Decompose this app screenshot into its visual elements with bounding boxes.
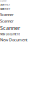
staticText: Scanner [0,24,20,32]
staticText: New Document [0,33,20,36]
staticText: Scanner [0,0,7,2]
staticText: New Document [0,37,27,42]
staticText: Scanner [0,12,14,17]
staticText: Scanner [0,3,10,6]
staticText: Scanner [0,18,14,23]
staticText: Scanner [0,7,10,11]
